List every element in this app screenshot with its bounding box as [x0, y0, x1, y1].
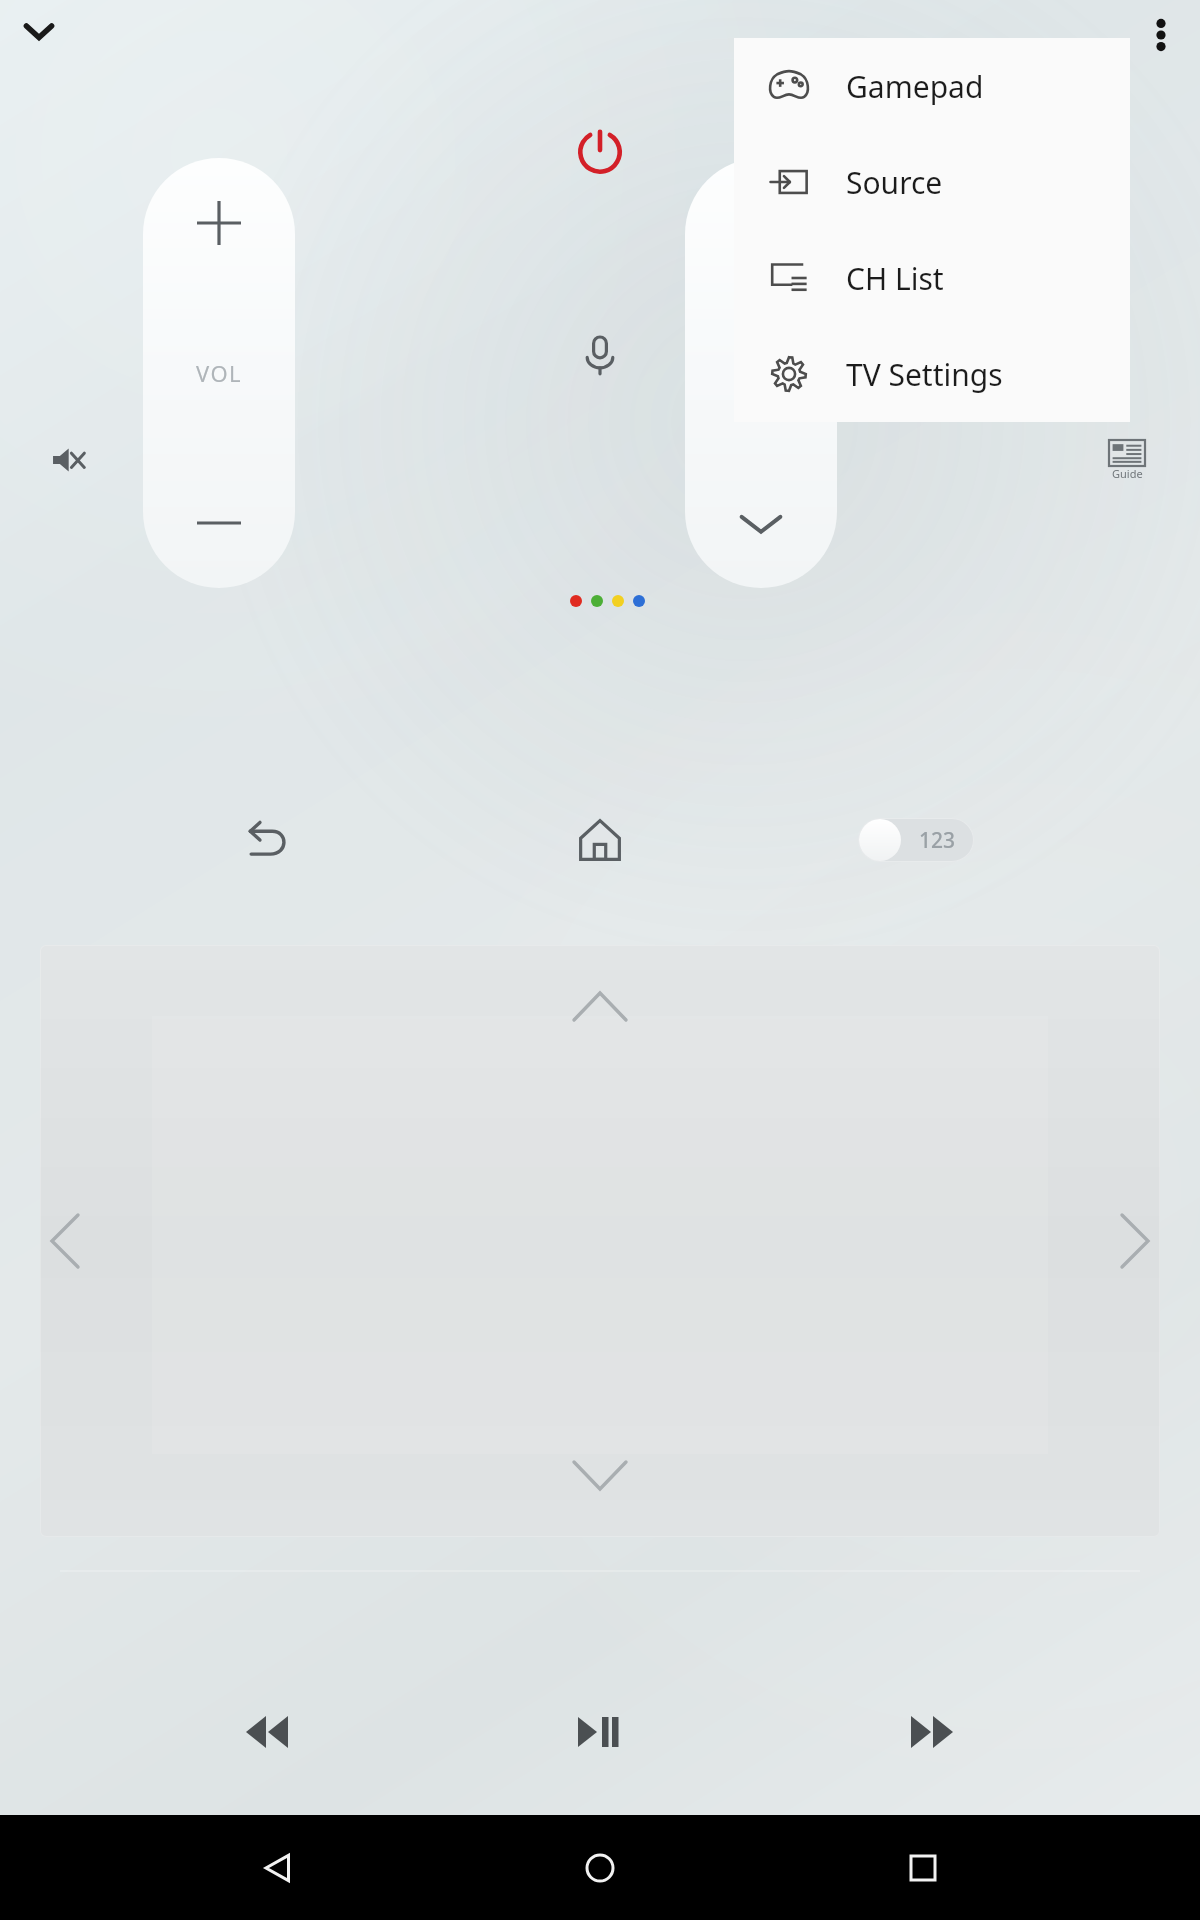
staticText: Source	[846, 162, 943, 203]
button[interactable]: Color button 3	[612, 595, 624, 607]
button[interactable]: Home	[565, 805, 635, 875]
button[interactable]: Volume up	[143, 158, 295, 288]
staticText: Gamepad	[846, 66, 984, 107]
button[interactable]: Color button 4	[633, 595, 645, 607]
staticText: CH List	[846, 258, 944, 299]
button[interactable]: Guide	[1095, 428, 1159, 492]
button[interactable]: Fast forward	[895, 1695, 969, 1769]
button[interactable]: Mute	[38, 430, 98, 490]
button[interactable]: Channel down	[685, 458, 837, 588]
button[interactable]: TV Settings	[734, 326, 1130, 422]
button[interactable]: Collapse	[8, 0, 70, 62]
button[interactable]: Color button 1	[570, 595, 582, 607]
button[interactable]: Source	[734, 134, 1130, 230]
button[interactable]: Gamepad	[734, 38, 1130, 134]
staticText: Guide	[1112, 466, 1143, 481]
button[interactable]: Home	[555, 1823, 645, 1913]
button[interactable]: CH List	[734, 230, 1130, 326]
button[interactable]: Volume down	[143, 458, 295, 588]
staticText: 123	[919, 826, 956, 855]
button[interactable]: Recent apps	[878, 1823, 968, 1913]
button[interactable]: More options	[1126, 0, 1196, 70]
staticText: CH	[685, 358, 837, 388]
button[interactable]: Power	[560, 112, 640, 192]
button[interactable]: Back	[232, 805, 302, 875]
button[interactable]: Channel up	[685, 158, 837, 288]
staticText: VOL	[143, 358, 295, 388]
button[interactable]: Play pause	[563, 1695, 637, 1769]
button[interactable]: Color button 2	[591, 595, 603, 607]
button[interactable]: Voice search	[565, 320, 635, 390]
button[interactable]: Number pad toggle	[858, 818, 974, 862]
button[interactable]: Back	[233, 1823, 323, 1913]
staticText: TV Settings	[846, 354, 1003, 395]
button[interactable]: Rewind	[230, 1695, 304, 1769]
